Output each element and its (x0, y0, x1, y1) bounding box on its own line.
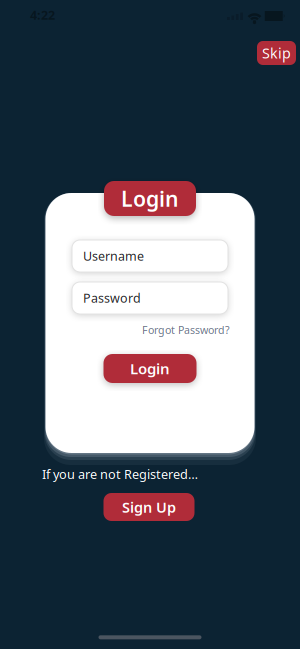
button[interactable]: Password (72, 282, 228, 314)
button[interactable]: Skip (257, 41, 296, 65)
staticText: Forgot Password? (142, 323, 230, 337)
staticText: Skip (262, 43, 291, 63)
staticText: Username (83, 247, 144, 264)
staticText: If you are not Registered… (42, 465, 198, 483)
button[interactable]: Forgot Password? (142, 323, 230, 337)
button[interactable]: Username (72, 240, 228, 272)
staticText: Sign Up (122, 497, 176, 517)
staticText: 4:22 (30, 6, 55, 23)
staticText: Password (83, 289, 141, 306)
staticText: Login (130, 358, 170, 379)
button[interactable]: Login (103, 354, 196, 383)
staticText: Login (121, 184, 179, 213)
button[interactable]: Sign Up (103, 493, 194, 521)
